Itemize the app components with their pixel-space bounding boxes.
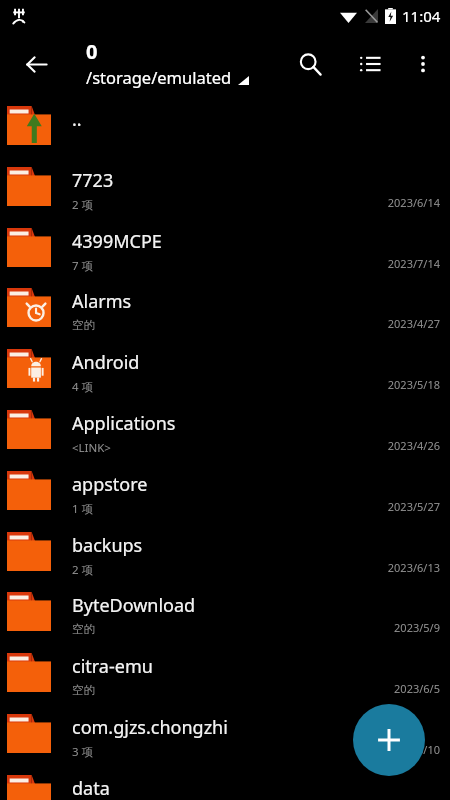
- button[interactable]: ..: [0, 103, 450, 163]
- button[interactable]: 7723: [0, 164, 450, 224]
- button[interactable]: Add: [353, 704, 425, 776]
- button[interactable]: Search: [288, 42, 332, 86]
- button[interactable]: 4399MCPE: [0, 225, 450, 285]
- staticText: 2023/7/14: [387, 256, 440, 271]
- staticText: Applications: [72, 411, 176, 436]
- staticText: 1 项: [72, 501, 94, 517]
- button[interactable]: data: [0, 772, 450, 800]
- button[interactable]: Alarms: [0, 285, 450, 345]
- staticText: 2023/6/14: [387, 195, 440, 210]
- staticText: 11:04: [402, 6, 441, 26]
- staticText: Alarms: [72, 289, 132, 314]
- staticText: ByteDownload: [72, 593, 196, 618]
- button[interactable]: Android: [0, 346, 450, 406]
- staticText: backups: [72, 533, 143, 558]
- button[interactable]: com.gjzs.chongzhi: [0, 711, 450, 771]
- staticText: ..: [72, 107, 82, 132]
- staticText: /storage/emulated: [86, 66, 232, 88]
- staticText: 2023/5/10: [387, 742, 440, 757]
- staticText: 2023/5/27: [387, 499, 440, 514]
- staticText: Android: [72, 350, 140, 375]
- button[interactable]: View mode: [348, 42, 392, 86]
- staticText: 空的: [72, 622, 95, 636]
- button[interactable]: appstore: [0, 468, 450, 528]
- button[interactable]: More options: [402, 43, 444, 85]
- button[interactable]: ByteDownload: [0, 589, 450, 649]
- button[interactable]: citra-emu: [0, 650, 450, 710]
- button[interactable]: 0: [86, 38, 249, 88]
- staticText: 2 项: [72, 197, 94, 213]
- staticText: 空的: [72, 318, 95, 332]
- staticText: com.gjzs.chongzhi: [72, 715, 228, 740]
- button[interactable]: Applications: [0, 407, 450, 467]
- staticText: 2023/6/13: [387, 560, 440, 575]
- staticText: 4 项: [72, 379, 94, 395]
- staticText: 2023/4/26: [387, 438, 440, 453]
- staticText: <LINK>: [72, 440, 111, 456]
- staticText: appstore: [72, 472, 148, 497]
- staticText: 3 项: [72, 744, 94, 760]
- staticText: data: [72, 776, 110, 800]
- staticText: 2023/4/27: [387, 316, 440, 331]
- staticText: citra-emu: [72, 654, 153, 679]
- staticText: 2023/5/18: [387, 377, 440, 392]
- staticText: 7723: [72, 168, 114, 193]
- staticText: 2023/5/9: [394, 620, 440, 635]
- staticText: 7 项: [72, 258, 94, 274]
- staticText: 4399MCPE: [72, 229, 162, 254]
- staticText: 空的: [72, 683, 95, 697]
- staticText: 0: [86, 38, 98, 65]
- button[interactable]: Back: [16, 44, 56, 84]
- staticText: 2 项: [72, 562, 94, 578]
- staticText: 2023/6/5: [394, 681, 440, 696]
- button[interactable]: backups: [0, 529, 450, 589]
